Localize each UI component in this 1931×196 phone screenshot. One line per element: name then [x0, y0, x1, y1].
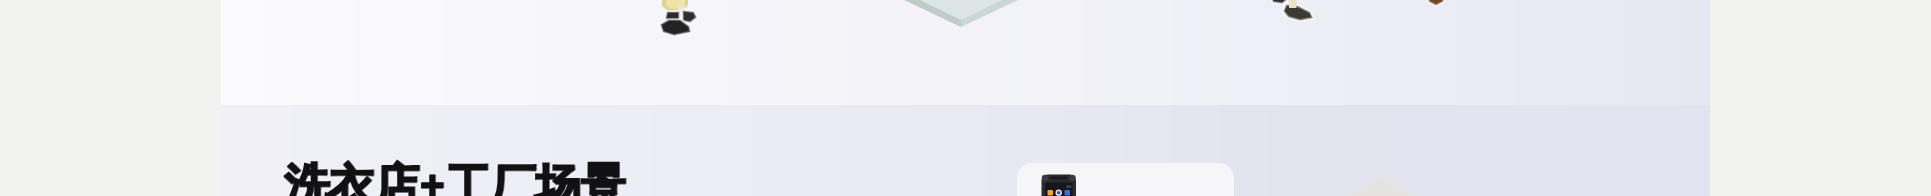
button[interactable]: 场景预览	[1017, 163, 1234, 196]
staticText: 洗衣店+工厂场景	[284, 153, 626, 196]
staticText: 洗衣店+工厂场景	[285, 153, 627, 196]
button[interactable]: 洗衣店+工厂场景	[284, 153, 626, 196]
staticText: 洗衣店+工厂场景	[284, 154, 626, 196]
button[interactable]: 场景插画	[221, 0, 1710, 105]
